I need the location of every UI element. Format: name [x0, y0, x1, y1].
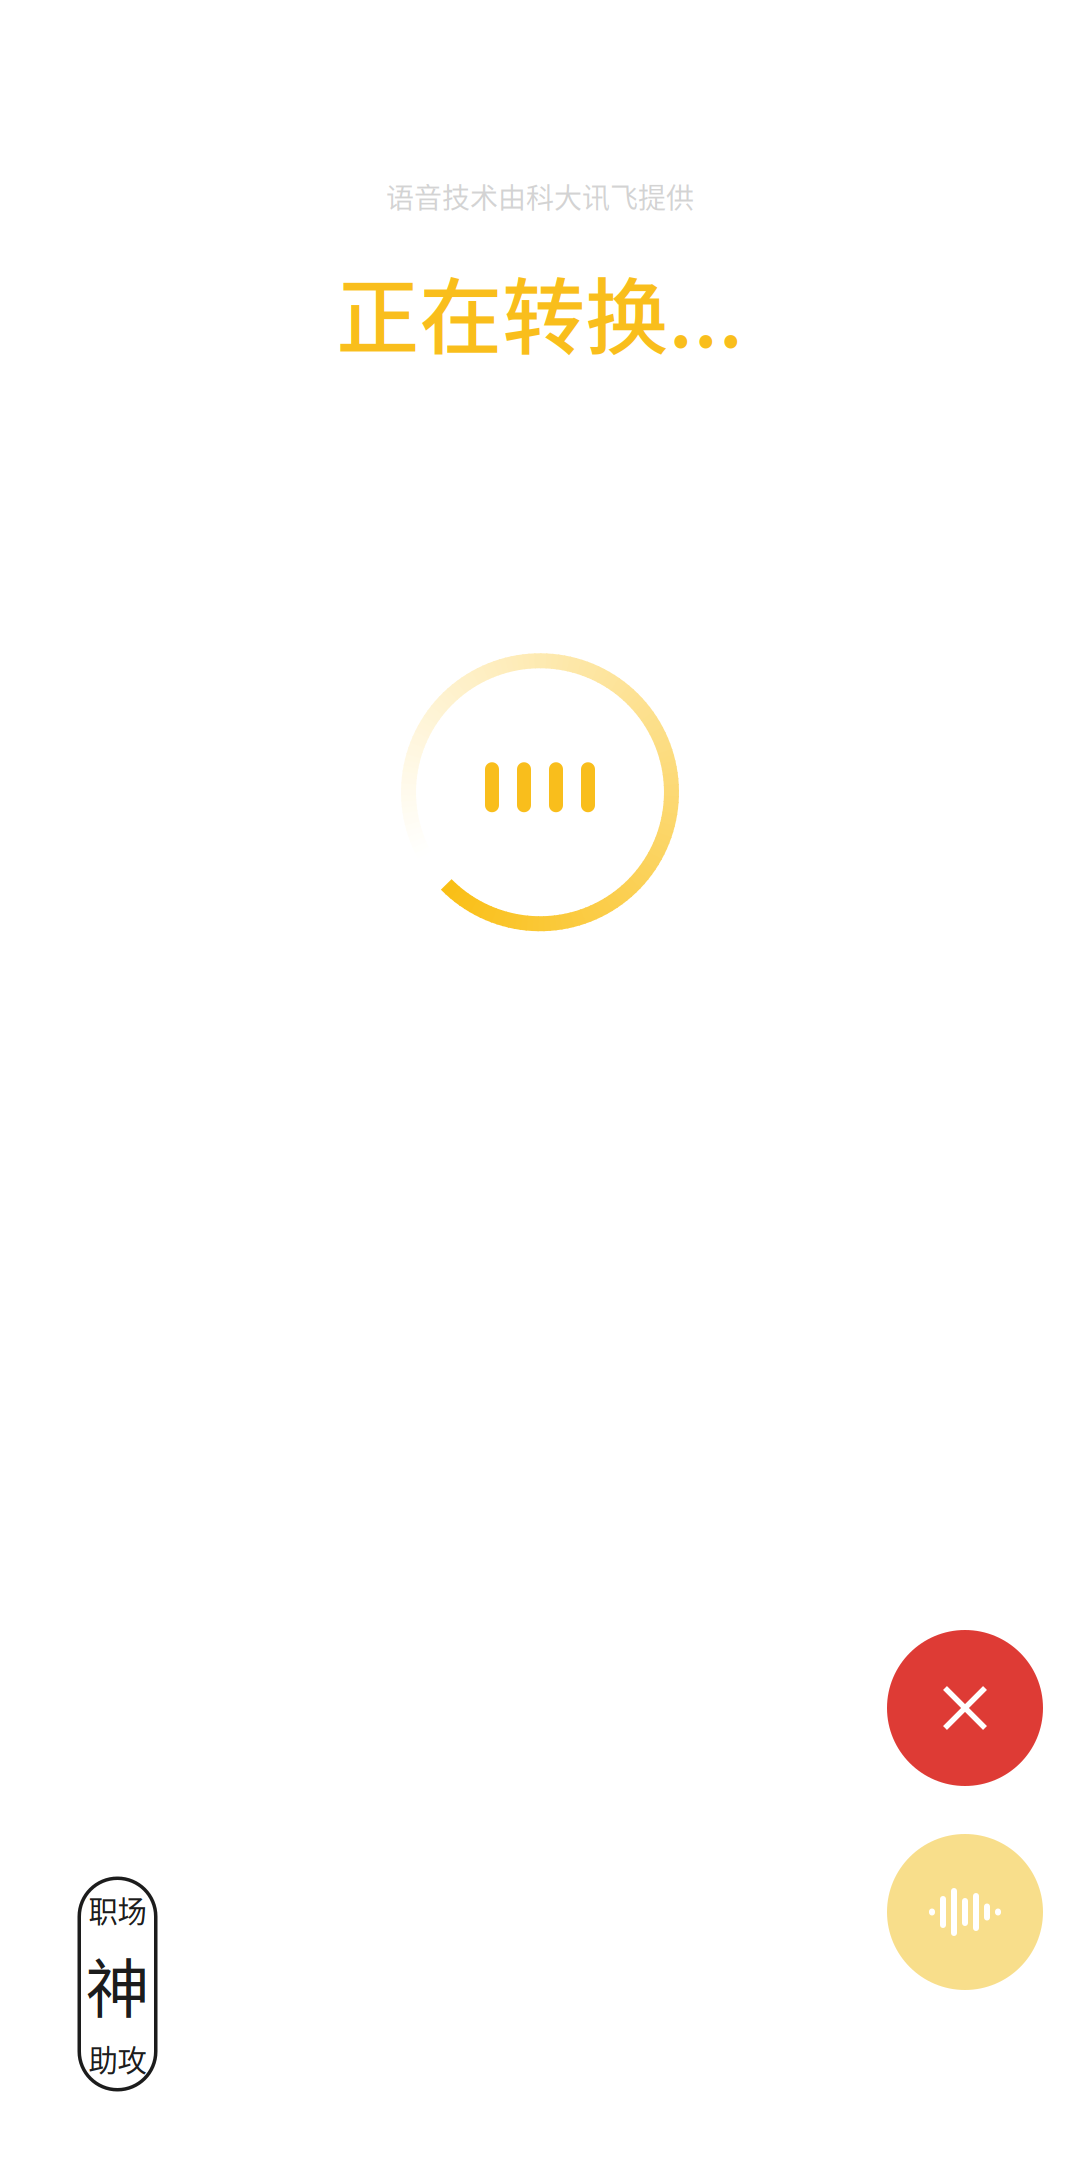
staticText: 语音技术由科大讯飞提供 [386, 176, 694, 216]
staticText: 神 [85, 1938, 149, 2030]
staticText: 助攻 [88, 2037, 146, 2080]
button[interactable]: Cancel [887, 1630, 1043, 1786]
staticText: 职场 [88, 1888, 146, 1931]
staticText: 正在转换... [336, 251, 743, 371]
button[interactable]: Record [887, 1834, 1043, 1990]
